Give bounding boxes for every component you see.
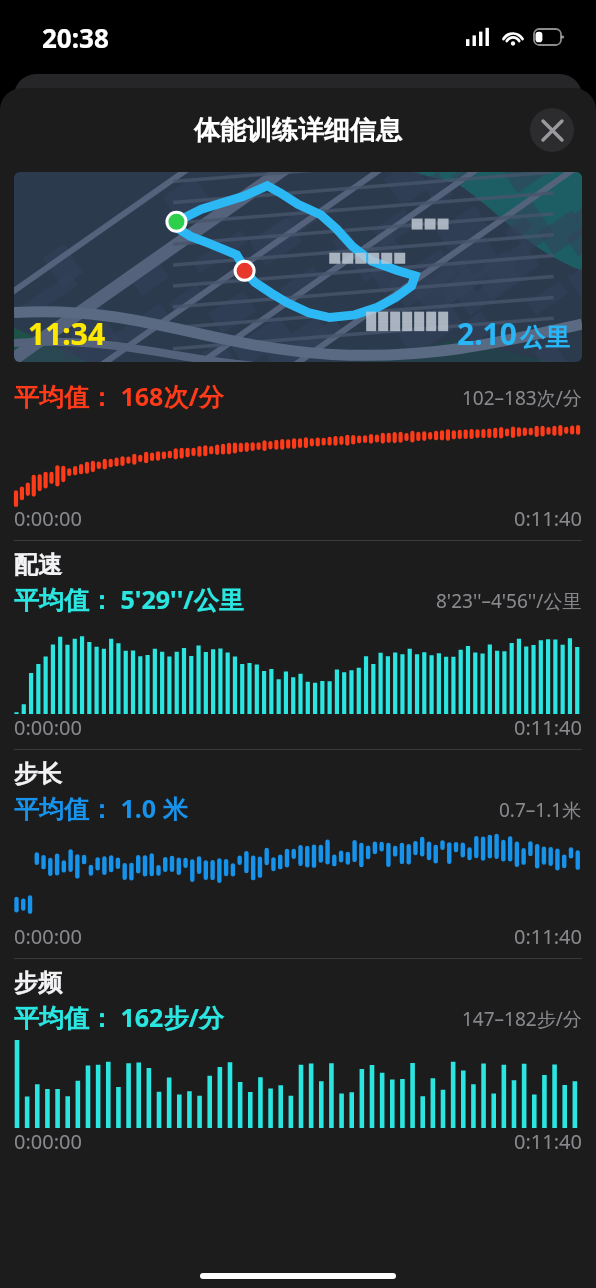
staticText: 8'23''–4'56''/公里 — [436, 588, 582, 614]
button[interactable]: 步频 — [0, 959, 596, 1163]
staticText: 平均值： 5'29''/公里 — [14, 582, 244, 616]
staticText: 步长 — [14, 759, 62, 789]
staticText: 2.10 — [457, 313, 517, 354]
staticText: 平均值： 168次/分 — [14, 379, 224, 413]
staticText: 0:00:00 — [14, 714, 82, 741]
staticText: 0:11:40 — [514, 923, 582, 950]
staticText: 147–182步/分 — [462, 1006, 582, 1032]
staticText: 配速 — [14, 550, 62, 580]
button[interactable]: 配速 — [0, 541, 596, 749]
button[interactable]: 关闭 — [530, 108, 574, 152]
staticText: 平均值： 162步/分 — [14, 1000, 224, 1034]
staticText: 平均值： 1.0 米 — [14, 791, 188, 825]
staticText: 体能训练详细信息 — [194, 114, 402, 147]
staticText: 20:38 — [42, 20, 109, 55]
staticText: 0:11:40 — [514, 714, 582, 741]
staticText: 11:34 — [28, 313, 106, 354]
staticText: 0:11:40 — [514, 1128, 582, 1155]
staticText: 0:00:00 — [14, 923, 82, 950]
staticText: 0:00:00 — [14, 505, 82, 532]
staticText: 公里 — [520, 322, 570, 353]
staticText: 102–183次/分 — [462, 385, 582, 411]
staticText: 0:00:00 — [14, 1128, 82, 1155]
staticText: 步频 — [14, 968, 62, 998]
button[interactable]: 平均值： 168次/分 — [0, 370, 596, 540]
staticText: 0:11:40 — [514, 505, 582, 532]
button[interactable]: 11:34 — [14, 172, 582, 362]
staticText: 0.7–1.1米 — [499, 797, 582, 823]
button[interactable]: 步长 — [0, 750, 596, 958]
